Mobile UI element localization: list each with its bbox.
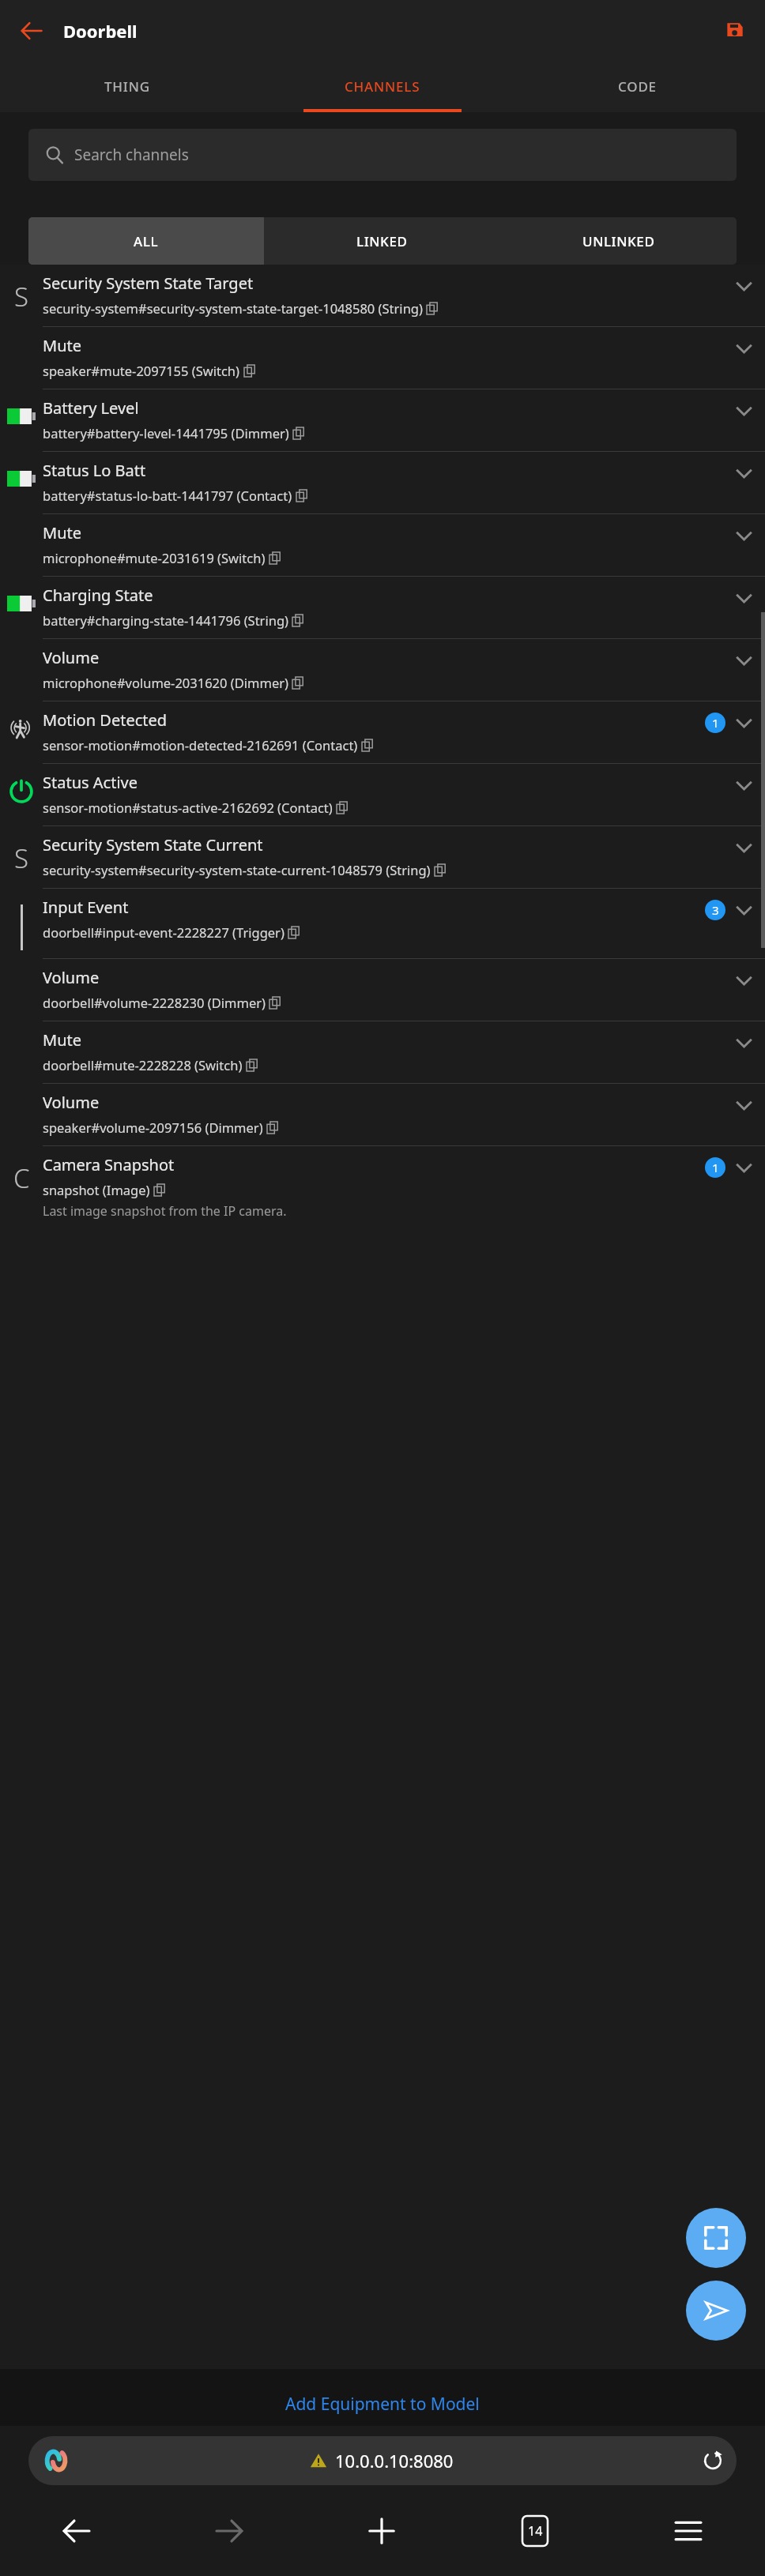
staticText: 10.0.0.10:8080 [335, 2449, 454, 2473]
staticText: battery#status-lo-batt-1441797 (Contact) [43, 487, 292, 504]
staticText: CHANNELS [345, 77, 420, 96]
staticText: speaker#volume-2097156 (Dimmer) [43, 1119, 263, 1136]
staticText: security-system#security-system-state-ta… [43, 299, 423, 317]
button[interactable]: Expand [732, 1156, 756, 1179]
staticText: CODE [618, 77, 657, 96]
staticText: Search channels [74, 145, 189, 165]
button[interactable]: Input Event [0, 888, 765, 958]
button[interactable]: S [0, 265, 765, 326]
staticText: sensor-motion#motion-detected-2162691 (C… [43, 736, 358, 754]
button[interactable]: Mute [0, 513, 765, 576]
button[interactable]: Expand [732, 274, 756, 298]
staticText: Last image snapshot from the IP camera. [43, 1202, 287, 1220]
button[interactable]: LINKED [264, 217, 500, 265]
staticText: 14 [528, 2522, 543, 2540]
staticText: Doorbell [63, 19, 138, 43]
button[interactable]: Expand [732, 337, 756, 360]
staticText: Status Active [43, 772, 138, 793]
staticText: doorbell#mute-2228228 (Switch) [43, 1056, 243, 1074]
button[interactable]: Volume [0, 638, 765, 701]
button[interactable]: Reload [695, 2443, 730, 2478]
staticText: Security System State Target [43, 273, 254, 294]
staticText: 3 [712, 902, 719, 918]
button[interactable]: Scan [686, 2208, 746, 2268]
staticText: 1 [712, 715, 719, 731]
button[interactable]: Back [9, 9, 54, 53]
button[interactable]: Expand [732, 649, 756, 672]
staticText: Mute [43, 335, 81, 356]
button[interactable]: Volume [0, 958, 765, 1021]
staticText: security-system#security-system-state-cu… [43, 861, 431, 878]
button[interactable]: Save [714, 10, 756, 51]
staticText: Charging State [43, 585, 153, 606]
staticText: S [14, 279, 29, 314]
staticText: battery#charging-state-1441796 (String) [43, 611, 288, 629]
staticText: battery#battery-level-1441795 (Dimmer) [43, 424, 289, 442]
button[interactable]: Tabs [458, 2497, 612, 2565]
staticText: Status Lo Batt [43, 460, 146, 481]
button[interactable]: Expand [732, 1093, 756, 1117]
button[interactable]: Search channels [28, 129, 737, 181]
staticText: speaker#mute-2097155 (Switch) [43, 362, 240, 379]
button[interactable]: Back [0, 2497, 153, 2565]
staticText: doorbell#volume-2228230 (Dimmer) [43, 994, 266, 1011]
button[interactable]: S [0, 825, 765, 888]
button[interactable]: 10.0.0.10:8080 [28, 2436, 737, 2485]
button[interactable]: Expand [732, 399, 756, 423]
button[interactable]: Expand [732, 1031, 756, 1055]
button[interactable]: Expand [732, 836, 756, 859]
button[interactable]: Send [686, 2281, 746, 2341]
button[interactable]: Add Equipment to Model [0, 2393, 765, 2426]
staticText: Security System State Current [43, 834, 263, 856]
button[interactable]: Expand [732, 711, 756, 735]
staticText: Volume [43, 967, 100, 988]
staticText: Battery Level [43, 397, 139, 419]
button[interactable]: Expand [732, 898, 756, 922]
staticText: snapshot (Image) [43, 1181, 150, 1198]
staticText: Input Event [43, 897, 129, 918]
staticText: Motion Detected [43, 709, 168, 731]
staticText: microphone#mute-2031619 (Switch) [43, 549, 266, 566]
button[interactable]: Forward [153, 2497, 305, 2565]
staticText: ALL [134, 232, 159, 250]
button[interactable]: Mute [0, 1021, 765, 1083]
button[interactable]: CHANNELS [254, 61, 510, 112]
button[interactable]: Expand [732, 586, 756, 610]
staticText: C [13, 1160, 30, 1196]
button[interactable]: Mute [0, 326, 765, 389]
button[interactable]: Status Active [0, 763, 765, 825]
staticText: Camera Snapshot [43, 1154, 175, 1175]
staticText: 1 [712, 1160, 719, 1175]
staticText: doorbell#input-event-2228227 (Trigger) [43, 923, 285, 941]
button[interactable]: Battery Level [0, 389, 765, 451]
button[interactable]: Expand [732, 773, 756, 797]
staticText: sensor-motion#status-active-2162692 (Con… [43, 799, 333, 816]
button[interactable]: Status Lo Batt [0, 451, 765, 513]
button[interactable]: ALL [28, 217, 264, 265]
staticText: Add Equipment to Model [285, 2393, 480, 2416]
button[interactable]: New tab [305, 2497, 458, 2565]
button[interactable]: C [0, 1145, 765, 1229]
staticText: UNLINKED [582, 232, 655, 250]
staticText: Volume [43, 1092, 100, 1113]
button[interactable]: Expand [732, 461, 756, 485]
button[interactable]: Motion Detected [0, 701, 765, 763]
staticText: microphone#volume-2031620 (Dimmer) [43, 674, 288, 691]
button[interactable]: Charging State [0, 576, 765, 638]
button[interactable]: Menu [612, 2497, 765, 2565]
staticText: THING [104, 77, 150, 96]
button[interactable]: Volume [0, 1083, 765, 1145]
button[interactable]: CODE [510, 61, 765, 112]
button[interactable]: Expand [732, 968, 756, 992]
button[interactable]: Expand [732, 524, 756, 547]
button[interactable]: THING [0, 61, 254, 112]
button[interactable]: UNLINKED [500, 217, 737, 265]
staticText: S [14, 840, 29, 876]
staticText: Volume [43, 647, 100, 668]
staticText: LINKED [356, 232, 408, 250]
staticText: Mute [43, 1029, 81, 1051]
staticText: Mute [43, 522, 81, 543]
